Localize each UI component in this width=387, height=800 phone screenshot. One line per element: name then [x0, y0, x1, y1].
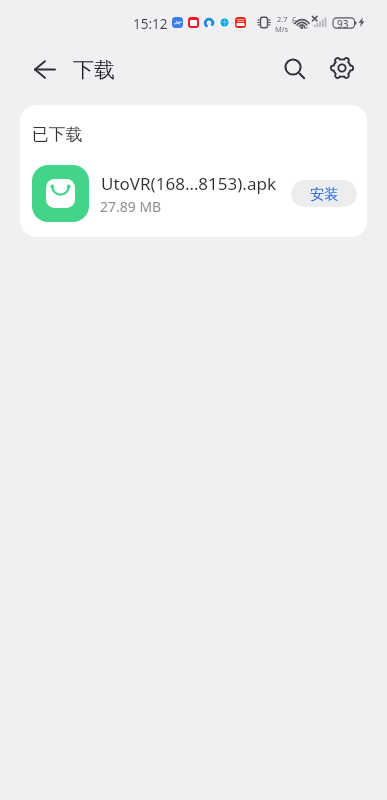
button[interactable]: Back	[24, 48, 64, 88]
button[interactable]: Search	[270, 46, 314, 90]
staticText: 安装	[310, 185, 339, 203]
staticText: 6	[292, 15, 297, 26]
staticText: 2.7	[277, 14, 288, 24]
button[interactable]: 安装	[291, 180, 357, 207]
staticText: UtoVR(168…8153).apk	[101, 172, 276, 195]
staticText: M/s	[275, 24, 289, 34]
button[interactable]: Settings	[320, 46, 364, 90]
staticText: 下载	[73, 57, 115, 83]
button[interactable]: UtoVR(168…8153).apk	[20, 155, 367, 237]
staticText: 93	[337, 17, 349, 31]
staticText: 已下载	[32, 124, 83, 145]
staticText: 15:12	[133, 15, 168, 33]
staticText: 27.89 MB	[100, 197, 162, 216]
